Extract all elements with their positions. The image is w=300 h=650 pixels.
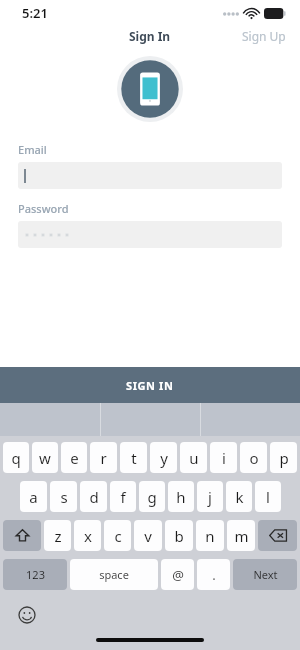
button[interactable]: x (74, 520, 101, 551)
staticText: 123 (26, 567, 45, 582)
staticText: Sign Up (242, 28, 286, 44)
staticText: y (160, 448, 168, 468)
staticText: c (114, 526, 122, 546)
button[interactable]: j (197, 481, 223, 512)
button[interactable] (18, 162, 282, 189)
staticText: j (208, 487, 212, 507)
button[interactable]: Next (233, 559, 297, 590)
staticText: s (60, 487, 68, 507)
button[interactable]: t (120, 442, 147, 473)
button[interactable]: i (210, 442, 237, 473)
staticText: h (176, 487, 186, 507)
staticText: v (144, 526, 152, 546)
button[interactable]: s (50, 481, 77, 512)
button[interactable]: v (134, 520, 162, 551)
button[interactable]: SIGN IN (0, 367, 300, 403)
button[interactable]: e (61, 442, 87, 473)
button[interactable]: o (240, 442, 267, 473)
button[interactable]: . (197, 559, 230, 590)
staticText: n (205, 526, 215, 546)
staticText: d (89, 487, 99, 507)
button[interactable]: a (20, 481, 47, 512)
button[interactable]: b (165, 520, 193, 551)
staticText: l (266, 487, 270, 507)
button[interactable]: d (80, 481, 107, 512)
staticText: w (39, 448, 51, 468)
staticText: k (235, 487, 244, 507)
button[interactable]: z (44, 520, 71, 551)
button[interactable]: Sign Up (228, 26, 300, 46)
staticText: Email (18, 142, 47, 157)
button[interactable]: Emoji (16, 604, 38, 626)
button[interactable]: g (139, 481, 165, 512)
button[interactable]: k (226, 481, 252, 512)
button[interactable]: @ (161, 559, 194, 590)
staticText: Sign In (129, 28, 171, 44)
button[interactable]: r (90, 442, 117, 473)
button[interactable]: p (270, 442, 297, 473)
staticText: 5:21 (22, 4, 48, 22)
staticText: f (120, 487, 126, 507)
button[interactable]: w (32, 442, 58, 473)
staticText: x (84, 526, 92, 546)
button[interactable]: Shift (3, 520, 41, 551)
button[interactable]: c (104, 520, 131, 551)
button[interactable]: n (196, 520, 224, 551)
button[interactable]: q (3, 442, 29, 473)
staticText: u (189, 448, 199, 468)
button[interactable]: l (255, 481, 281, 512)
staticText: o (249, 448, 259, 468)
staticText: space (99, 567, 129, 582)
button[interactable]: 123 (3, 559, 67, 590)
staticText: b (174, 526, 184, 546)
staticText: z (54, 526, 62, 546)
staticText: Next (253, 567, 278, 582)
button[interactable]: h (168, 481, 194, 512)
button[interactable]: space (70, 559, 158, 590)
button[interactable]: m (227, 520, 255, 551)
staticText: Password (18, 201, 69, 216)
staticText: t (131, 448, 137, 468)
staticText: a (29, 487, 38, 507)
button[interactable]: f (110, 481, 136, 512)
staticText: g (147, 487, 157, 507)
staticText: . (212, 566, 216, 584)
staticText: i (222, 448, 226, 468)
staticText: r (100, 448, 107, 468)
staticText: p (279, 448, 289, 468)
button[interactable]: y (150, 442, 177, 473)
button[interactable]: u (180, 442, 207, 473)
staticText: e (70, 448, 79, 468)
staticText: m (234, 526, 249, 546)
button[interactable]: Backspace (258, 520, 297, 551)
staticText: q (11, 448, 21, 468)
staticText: SIGN IN (126, 378, 174, 393)
staticText: @ (172, 566, 184, 584)
